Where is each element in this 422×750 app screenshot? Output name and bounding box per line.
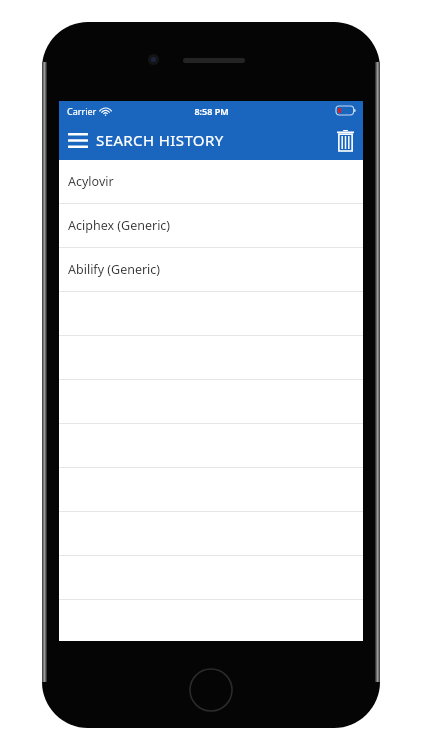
staticText: Acylovir: [68, 173, 114, 190]
staticText: Aciphex (Generic): [68, 217, 171, 234]
button[interactable]: Clear history: [328, 125, 363, 156]
staticText: Abilify (Generic): [68, 261, 161, 278]
button[interactable]: Aciphex (Generic): [59, 204, 363, 247]
staticText: SEARCH HISTORY: [96, 130, 224, 150]
staticText: 8:58 PM: [194, 105, 229, 117]
button[interactable]: Abilify (Generic): [59, 248, 363, 291]
button[interactable]: Menu: [59, 127, 94, 154]
staticText: Carrier: [67, 105, 97, 117]
button[interactable]: Acylovir: [59, 160, 363, 203]
other: Home: [189, 668, 233, 712]
